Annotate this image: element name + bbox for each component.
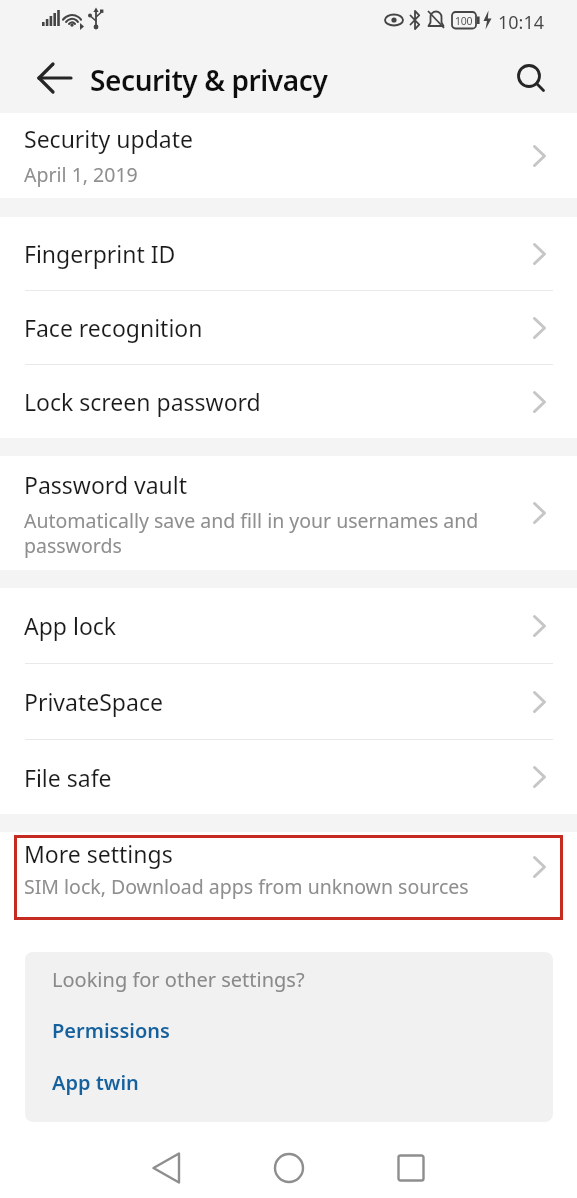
staticText: Lock screen password — [24, 386, 261, 417]
button[interactable]: PrivateSpace — [0, 664, 577, 739]
staticText: Security & privacy — [90, 61, 328, 99]
button[interactable]: More settings — [0, 832, 577, 942]
staticText: More settings — [24, 838, 173, 869]
button[interactable]: Permissions — [52, 1017, 170, 1044]
button[interactable]: Security update — [0, 113, 577, 198]
staticText: Security update — [24, 123, 193, 154]
staticText: 10:14 — [498, 10, 545, 35]
button[interactable]: Face recognition — [0, 291, 577, 364]
button[interactable]: Fingerprint ID — [0, 217, 577, 290]
staticText: App lock — [24, 610, 117, 641]
button[interactable] — [396, 1153, 426, 1183]
staticText: Password vault — [24, 469, 188, 500]
button[interactable] — [274, 1153, 304, 1183]
button[interactable]: File safe — [0, 740, 577, 814]
staticText: Face recognition — [24, 312, 203, 343]
staticText: PrivateSpace — [24, 686, 163, 717]
button[interactable]: App twin — [52, 1069, 139, 1096]
staticText: Looking for other settings? — [52, 966, 305, 993]
button[interactable] — [517, 45, 577, 113]
button[interactable]: Lock screen password — [0, 365, 577, 438]
staticText: File safe — [24, 762, 112, 793]
staticText: April 1, 2019 — [24, 161, 138, 188]
staticText: SIM lock, Download apps from unknown sou… — [24, 873, 469, 900]
button[interactable]: Password vault — [0, 456, 577, 570]
button[interactable]: App lock — [0, 588, 577, 663]
button[interactable] — [152, 1153, 182, 1183]
staticText: Fingerprint ID — [24, 238, 176, 269]
button[interactable] — [0, 45, 56, 113]
staticText: 100 — [455, 14, 473, 28]
staticText: Automatically save and fill in your user… — [24, 507, 479, 558]
